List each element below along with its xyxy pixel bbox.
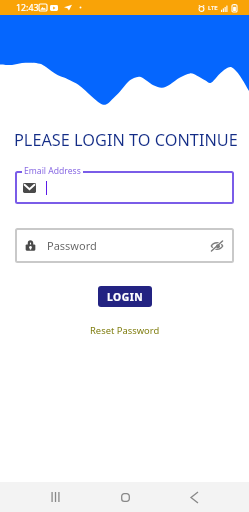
staticText: Password [47, 238, 97, 253]
staticText: LTE [208, 4, 218, 12]
staticText: LOGIN [107, 290, 144, 304]
button[interactable] [15, 228, 234, 263]
button[interactable]: Reset Password [84, 321, 166, 340]
staticText: 12:43 [16, 2, 39, 14]
staticText: Reset Password [90, 324, 160, 337]
button[interactable]: Recent apps [40, 482, 70, 512]
button[interactable]: Show password [211, 241, 223, 251]
button[interactable]: LOGIN [98, 286, 152, 307]
staticText: Email Address [24, 165, 81, 177]
button[interactable]: Home [110, 482, 140, 512]
button[interactable]: Back [179, 482, 209, 512]
staticText: PLEASE LOGIN TO CONTINUE [14, 129, 238, 151]
button[interactable] [15, 171, 234, 204]
